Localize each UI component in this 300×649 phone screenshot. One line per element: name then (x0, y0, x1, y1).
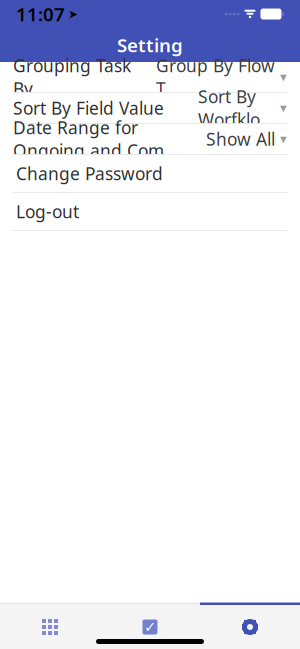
button[interactable]: Change Password (0, 155, 300, 193)
staticText: ➤ (68, 7, 78, 21)
staticText: ▾ (280, 131, 287, 146)
staticText: Group By Flow T... (156, 54, 275, 100)
staticText: Change Password (16, 162, 163, 185)
button[interactable]: Date Range for Ongoing and Com... (0, 124, 300, 155)
staticText: Log-out (16, 200, 79, 223)
staticText: Setting (117, 33, 183, 57)
button[interactable]: Sort By Field Value (0, 93, 300, 124)
staticText: Date Range for Ongoing and Com... (13, 116, 179, 162)
staticText: ▾ (280, 100, 287, 115)
button[interactable]: Grouping Task By (0, 62, 300, 93)
staticText: ✓ (144, 619, 156, 635)
staticText: Show All (206, 127, 275, 150)
button[interactable]: Dashboard (0, 605, 100, 649)
button[interactable]: Log-out (0, 193, 300, 231)
staticText: 11:07 (16, 2, 65, 26)
button[interactable]: Tasks (100, 605, 200, 649)
button[interactable]: Settings (200, 605, 300, 649)
staticText: Sort By Field Value (13, 96, 164, 119)
staticText: Sort By Worfklo... (198, 85, 275, 131)
staticText: ▾ (280, 69, 287, 84)
staticText: Grouping Task By (13, 54, 131, 100)
